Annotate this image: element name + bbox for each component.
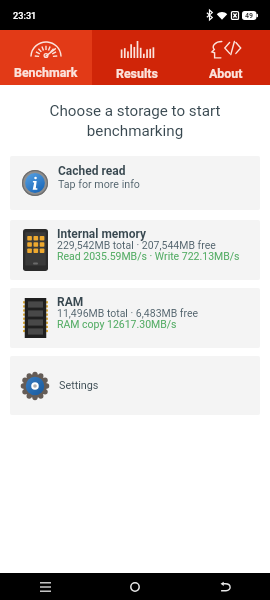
button[interactable]: Cached read: [10, 156, 260, 210]
staticText: About: [209, 66, 243, 81]
button[interactable]: Home: [90, 573, 180, 600]
staticText: RAM: [57, 295, 84, 309]
button[interactable]: Benchmark: [0, 30, 92, 85]
staticText: 23:31: [13, 10, 37, 21]
button[interactable]: Settings: [10, 356, 260, 415]
staticText: Settings: [59, 379, 99, 392]
button[interactable]: Internal memory: [10, 220, 260, 280]
staticText: Internal memory: [57, 227, 147, 241]
staticText: Results: [116, 66, 158, 81]
button[interactable]: Recent apps: [0, 573, 90, 600]
button[interactable]: Back: [180, 573, 270, 600]
staticText: RAM copy 12617.30MB/s: [57, 318, 177, 330]
staticText: 229,542MB total · 207,544MB free: [57, 239, 216, 251]
staticText: Choose a storage to start benchmarking: [0, 102, 270, 140]
button[interactable]: Results: [92, 30, 181, 85]
staticText: Benchmark: [14, 65, 78, 80]
staticText: Read 2035.59MB/s · Write 722.13MB/s: [57, 250, 240, 262]
button[interactable]: About: [181, 30, 270, 85]
staticText: Tap for more info: [58, 178, 140, 191]
staticText: 11,496MB total · 6,483MB free: [57, 307, 199, 319]
button[interactable]: RAM: [10, 288, 260, 348]
staticText: 49: [245, 12, 254, 20]
staticText: Cached read: [58, 164, 126, 178]
